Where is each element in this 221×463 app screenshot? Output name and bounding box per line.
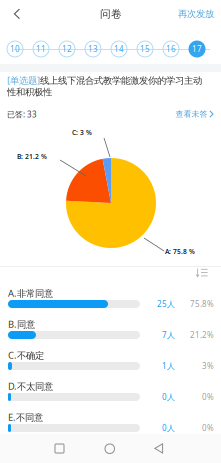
staticText: 再次发放 [178, 8, 214, 20]
staticText: 12 [62, 44, 72, 54]
button[interactable]: 14 [110, 40, 128, 58]
staticText: 3% [202, 361, 214, 371]
staticText: 16 [166, 44, 176, 54]
staticText: 75.8% [190, 299, 214, 309]
staticText: 0% [202, 423, 214, 433]
staticText: 0% [202, 392, 214, 402]
staticText: 查看未答 [175, 109, 207, 119]
staticText: 问卷 [100, 7, 122, 20]
staticText: 21.2% [190, 330, 214, 340]
button[interactable]: Home [105, 444, 114, 453]
staticText: 0人 [162, 423, 175, 433]
staticText: B.同意 [8, 318, 35, 330]
staticText: A.非常同意 [8, 287, 53, 299]
button[interactable]: 15 [136, 40, 154, 58]
button[interactable]: 13 [84, 40, 102, 58]
staticText: 7人 [162, 330, 175, 340]
button[interactable]: 16 [162, 40, 180, 58]
staticText: B: 21.2 % [17, 152, 47, 161]
staticText: C.不确定 [8, 349, 44, 361]
staticText: D.不太同意 [8, 380, 53, 392]
button[interactable]: 12 [58, 40, 76, 58]
staticText: 已答: 33 [7, 109, 37, 120]
button[interactable]: 17 [188, 40, 206, 58]
button[interactable]: 查看未答 [175, 109, 214, 119]
staticText: 13 [88, 44, 98, 54]
staticText: 0人 [162, 392, 175, 402]
staticText: 1人 [162, 361, 175, 371]
button[interactable]: 10 [6, 40, 24, 58]
button[interactable]: 再次发放 [178, 8, 214, 20]
staticText: 11 [36, 44, 46, 54]
staticText: 17 [192, 44, 202, 54]
staticText: 10 [10, 44, 20, 54]
button[interactable]: Back [13, 8, 21, 20]
button[interactable]: Sort [196, 268, 208, 278]
staticText: 15 [140, 44, 150, 54]
staticText: [单选题]线上线下混合式教学能激发你的学习主动性和积极性 [7, 74, 202, 98]
staticText: C: 3 % [72, 128, 92, 137]
button[interactable]: 11 [32, 40, 50, 58]
staticText: A: 75.8 % [165, 247, 195, 256]
button[interactable]: Back [154, 443, 164, 454]
staticText: E.不同意 [8, 411, 43, 423]
staticText: 25人 [157, 299, 175, 309]
staticText: 14 [114, 44, 124, 54]
button[interactable]: Recents [55, 444, 64, 453]
